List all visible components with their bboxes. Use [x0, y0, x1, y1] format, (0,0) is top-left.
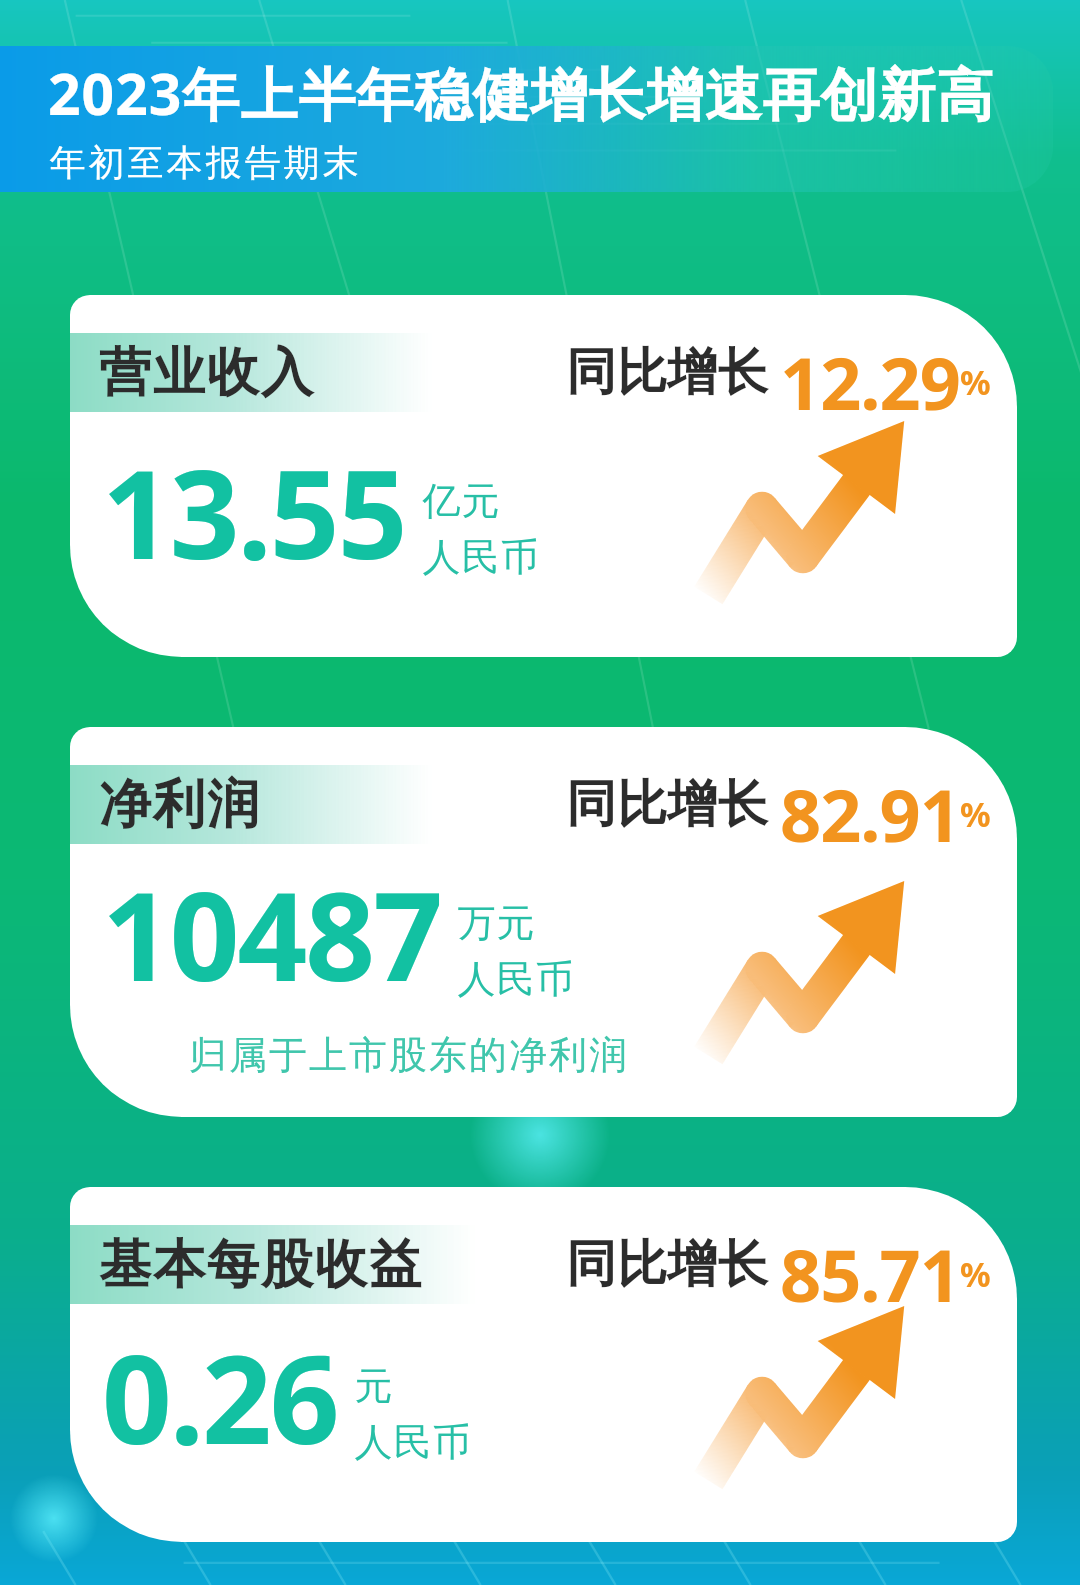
staticText: %	[960, 359, 991, 405]
staticText: 10487	[102, 851, 441, 1017]
staticText: 亿元	[422, 477, 500, 525]
staticText: 85.71	[780, 1225, 960, 1304]
staticText: %	[960, 791, 991, 837]
staticText: 营业收入	[98, 340, 314, 406]
button[interactable]: 基本每股收益	[70, 1187, 1017, 1542]
button[interactable]: 净利润	[70, 727, 1017, 1117]
staticText: 人民币	[422, 533, 539, 581]
staticText: 82.91	[780, 765, 960, 844]
staticText: 0.26	[102, 1314, 338, 1480]
staticText: 归属于上市股东的净利润	[188, 1031, 628, 1079]
staticText: 同比增长	[566, 341, 768, 404]
button[interactable]: 2023年上半年稳健增长增速再创新高	[0, 46, 1053, 192]
other: Growth trend rising	[704, 1301, 919, 1486]
staticText: 万元	[457, 899, 535, 947]
staticText: 同比增长	[566, 773, 768, 836]
staticText: 人民币	[457, 955, 574, 1003]
other: Growth trend rising	[704, 416, 919, 601]
staticText: 净利润	[98, 772, 260, 838]
staticText: 同比增长	[566, 1233, 768, 1296]
staticText: %	[960, 1251, 991, 1297]
staticText: 人民币	[354, 1418, 471, 1466]
staticText: 13.55	[102, 429, 406, 595]
staticText: 基本每股收益	[98, 1232, 422, 1298]
staticText: 年初至本报告期末	[48, 140, 360, 185]
other: Growth trend rising	[704, 876, 919, 1061]
staticText: 12.29	[780, 333, 960, 412]
staticText: 2023年上半年稳健增长增速再创新高	[48, 54, 995, 132]
button[interactable]: 营业收入	[70, 295, 1017, 657]
staticText: 元	[354, 1362, 393, 1410]
